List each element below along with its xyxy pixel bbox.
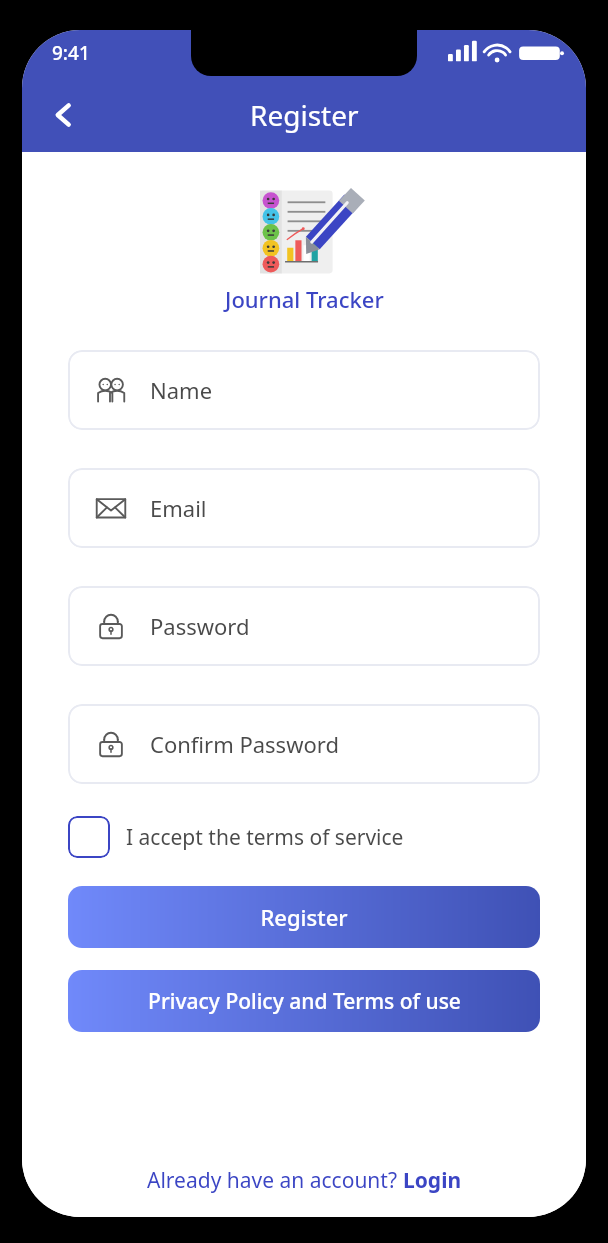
staticText: Already have an account? — [147, 1166, 403, 1195]
button[interactable]: Confirm Password — [68, 704, 540, 784]
staticText: Register — [260, 902, 348, 932]
staticText: Journal Tracker — [225, 284, 384, 314]
button[interactable]: I accept the terms of service — [68, 816, 540, 858]
button[interactable]: Password — [68, 586, 540, 666]
staticText: Privacy Policy and Terms of use — [148, 987, 461, 1016]
button[interactable]: Back — [38, 89, 90, 141]
button[interactable]: Email — [68, 468, 540, 548]
staticText: 9:41 — [52, 40, 90, 66]
staticText: Password — [150, 611, 250, 641]
button[interactable]: Name — [68, 350, 540, 430]
staticText: Register — [250, 96, 359, 134]
staticText: Name — [150, 375, 213, 405]
staticText: Login — [403, 1166, 462, 1195]
button[interactable]: Privacy Policy and Terms of use — [68, 970, 540, 1032]
staticText: Email — [150, 493, 207, 523]
button[interactable]: Register — [68, 886, 540, 948]
button[interactable]: Already have an account? — [22, 1166, 586, 1217]
staticText: Confirm Password — [150, 729, 339, 759]
staticText: I accept the terms of service — [126, 823, 404, 852]
